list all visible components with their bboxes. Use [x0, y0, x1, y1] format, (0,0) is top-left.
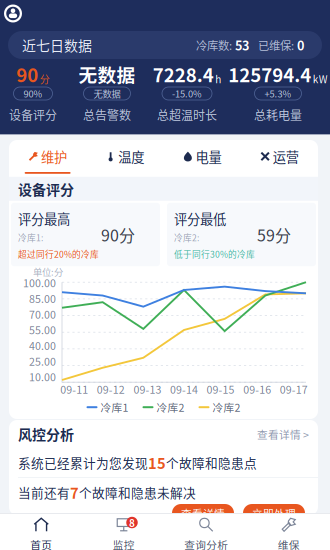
- staticText: +5.3%: [264, 87, 291, 100]
- staticText: 总告警数: [83, 106, 131, 123]
- button[interactable]: 查看详情: [172, 504, 234, 522]
- staticText: 125794.4: [228, 60, 311, 87]
- staticText: 首页: [30, 537, 52, 550]
- staticText: 85.00: [29, 291, 56, 306]
- staticText: 15: [148, 452, 166, 473]
- staticText: 无数据: [78, 60, 135, 87]
- staticText: 0: [297, 36, 304, 54]
- staticText: 维保: [278, 537, 300, 550]
- staticText: kW: [313, 71, 328, 86]
- button[interactable]: 立即处理: [243, 504, 305, 522]
- staticText: 冷库2:: [174, 231, 199, 244]
- staticText: 53: [235, 36, 249, 54]
- staticText: 7228.4: [153, 60, 214, 87]
- staticText: 超过同行20%的冷库: [18, 248, 99, 260]
- staticText: 09-16: [243, 381, 271, 397]
- staticText: 25.00: [29, 353, 56, 369]
- staticText: 09-13: [133, 381, 161, 397]
- staticText: 已维保:: [249, 37, 297, 53]
- staticText: -15.0%: [172, 87, 202, 100]
- staticText: 冷库1:: [18, 231, 43, 244]
- staticText: 59分: [257, 223, 291, 246]
- staticText: 查看详情: [181, 505, 225, 521]
- staticText: 09-17: [280, 381, 308, 397]
- staticText: 维护: [41, 147, 67, 166]
- staticText: 7: [70, 482, 79, 503]
- staticText: 风控分析: [18, 424, 74, 444]
- staticText: 冷库1: [100, 399, 128, 415]
- staticText: 设备评分: [18, 179, 74, 199]
- staticText: 电量: [195, 147, 221, 166]
- staticText: 近七日数据: [22, 35, 92, 55]
- staticText: 90分: [101, 223, 135, 246]
- staticText: h: [215, 71, 221, 86]
- button[interactable]: 温度: [86, 141, 163, 177]
- staticText: 查看详情: [257, 426, 301, 442]
- staticText: 查询分析: [184, 537, 228, 550]
- staticText: 8: [129, 515, 135, 530]
- staticText: 分: [40, 71, 50, 86]
- staticText: 单位:分: [33, 265, 63, 278]
- staticText: 90%: [23, 87, 42, 100]
- button[interactable]: 电量: [163, 141, 241, 177]
- staticText: 冷库2: [212, 399, 240, 415]
- staticText: 冷库2: [156, 399, 184, 415]
- button[interactable]: Profile: [0, 0, 26, 26]
- staticText: 评分最高: [18, 209, 70, 228]
- staticText: 90: [16, 60, 38, 87]
- staticText: 09-11: [60, 381, 88, 397]
- staticText: 100.00: [23, 275, 56, 290]
- staticText: 09-14: [170, 381, 198, 397]
- staticText: 冷库数:: [196, 37, 235, 53]
- staticText: 总耗电量: [254, 106, 302, 123]
- button[interactable]: 维护: [9, 141, 86, 177]
- staticText: 运营: [273, 147, 299, 166]
- staticText: 个故障和隐患未解决: [79, 483, 196, 501]
- staticText: 09-15: [207, 381, 235, 397]
- staticText: 09-12: [97, 381, 125, 397]
- staticText: 系统已经累计为您发现: [18, 453, 148, 472]
- staticText: 设备评分: [9, 106, 57, 123]
- staticText: 温度: [118, 147, 144, 166]
- button[interactable]: 维保: [247, 513, 330, 550]
- staticText: 当前还有: [18, 483, 70, 501]
- staticText: 70.00: [29, 306, 56, 322]
- button[interactable]: 8: [82, 513, 165, 550]
- staticText: 个故障和隐患点: [166, 453, 257, 472]
- staticText: 总超温时长: [157, 106, 217, 123]
- button[interactable]: 首页: [0, 513, 82, 550]
- staticText: 低于同行30%的冷库: [174, 248, 255, 260]
- staticText: 55.00: [29, 322, 56, 337]
- button[interactable]: 查看详情: [257, 420, 309, 448]
- staticText: 评分最低: [174, 209, 226, 228]
- staticText: >: [303, 426, 309, 442]
- button[interactable]: 运营: [241, 141, 318, 177]
- staticText: 立即处理: [252, 505, 296, 521]
- staticText: 监控: [113, 537, 135, 550]
- staticText: 40.00: [29, 338, 56, 353]
- button[interactable]: 查询分析: [165, 513, 247, 550]
- staticText: 10.00: [29, 369, 56, 384]
- staticText: 无数据: [93, 87, 120, 100]
